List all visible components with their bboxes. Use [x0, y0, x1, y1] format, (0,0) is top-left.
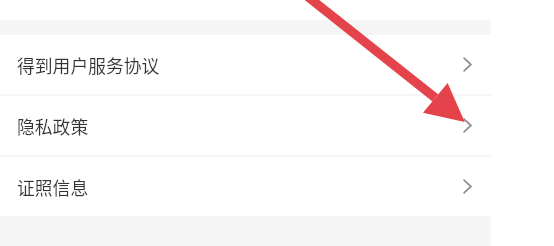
staticText: 证照信息 — [17, 174, 89, 200]
button[interactable]: 证照信息 — [0, 157, 491, 216]
other: 得到用户服务协议 — [463, 57, 472, 72]
other: 证照信息 — [463, 179, 472, 194]
staticText: 隐私政策 — [17, 113, 89, 139]
button[interactable]: 得到用户服务协议 — [0, 35, 491, 94]
button[interactable]: 隐私政策 — [0, 96, 491, 155]
other: 隐私政策 — [463, 118, 472, 133]
staticText: 得到用户服务协议 — [17, 52, 160, 78]
